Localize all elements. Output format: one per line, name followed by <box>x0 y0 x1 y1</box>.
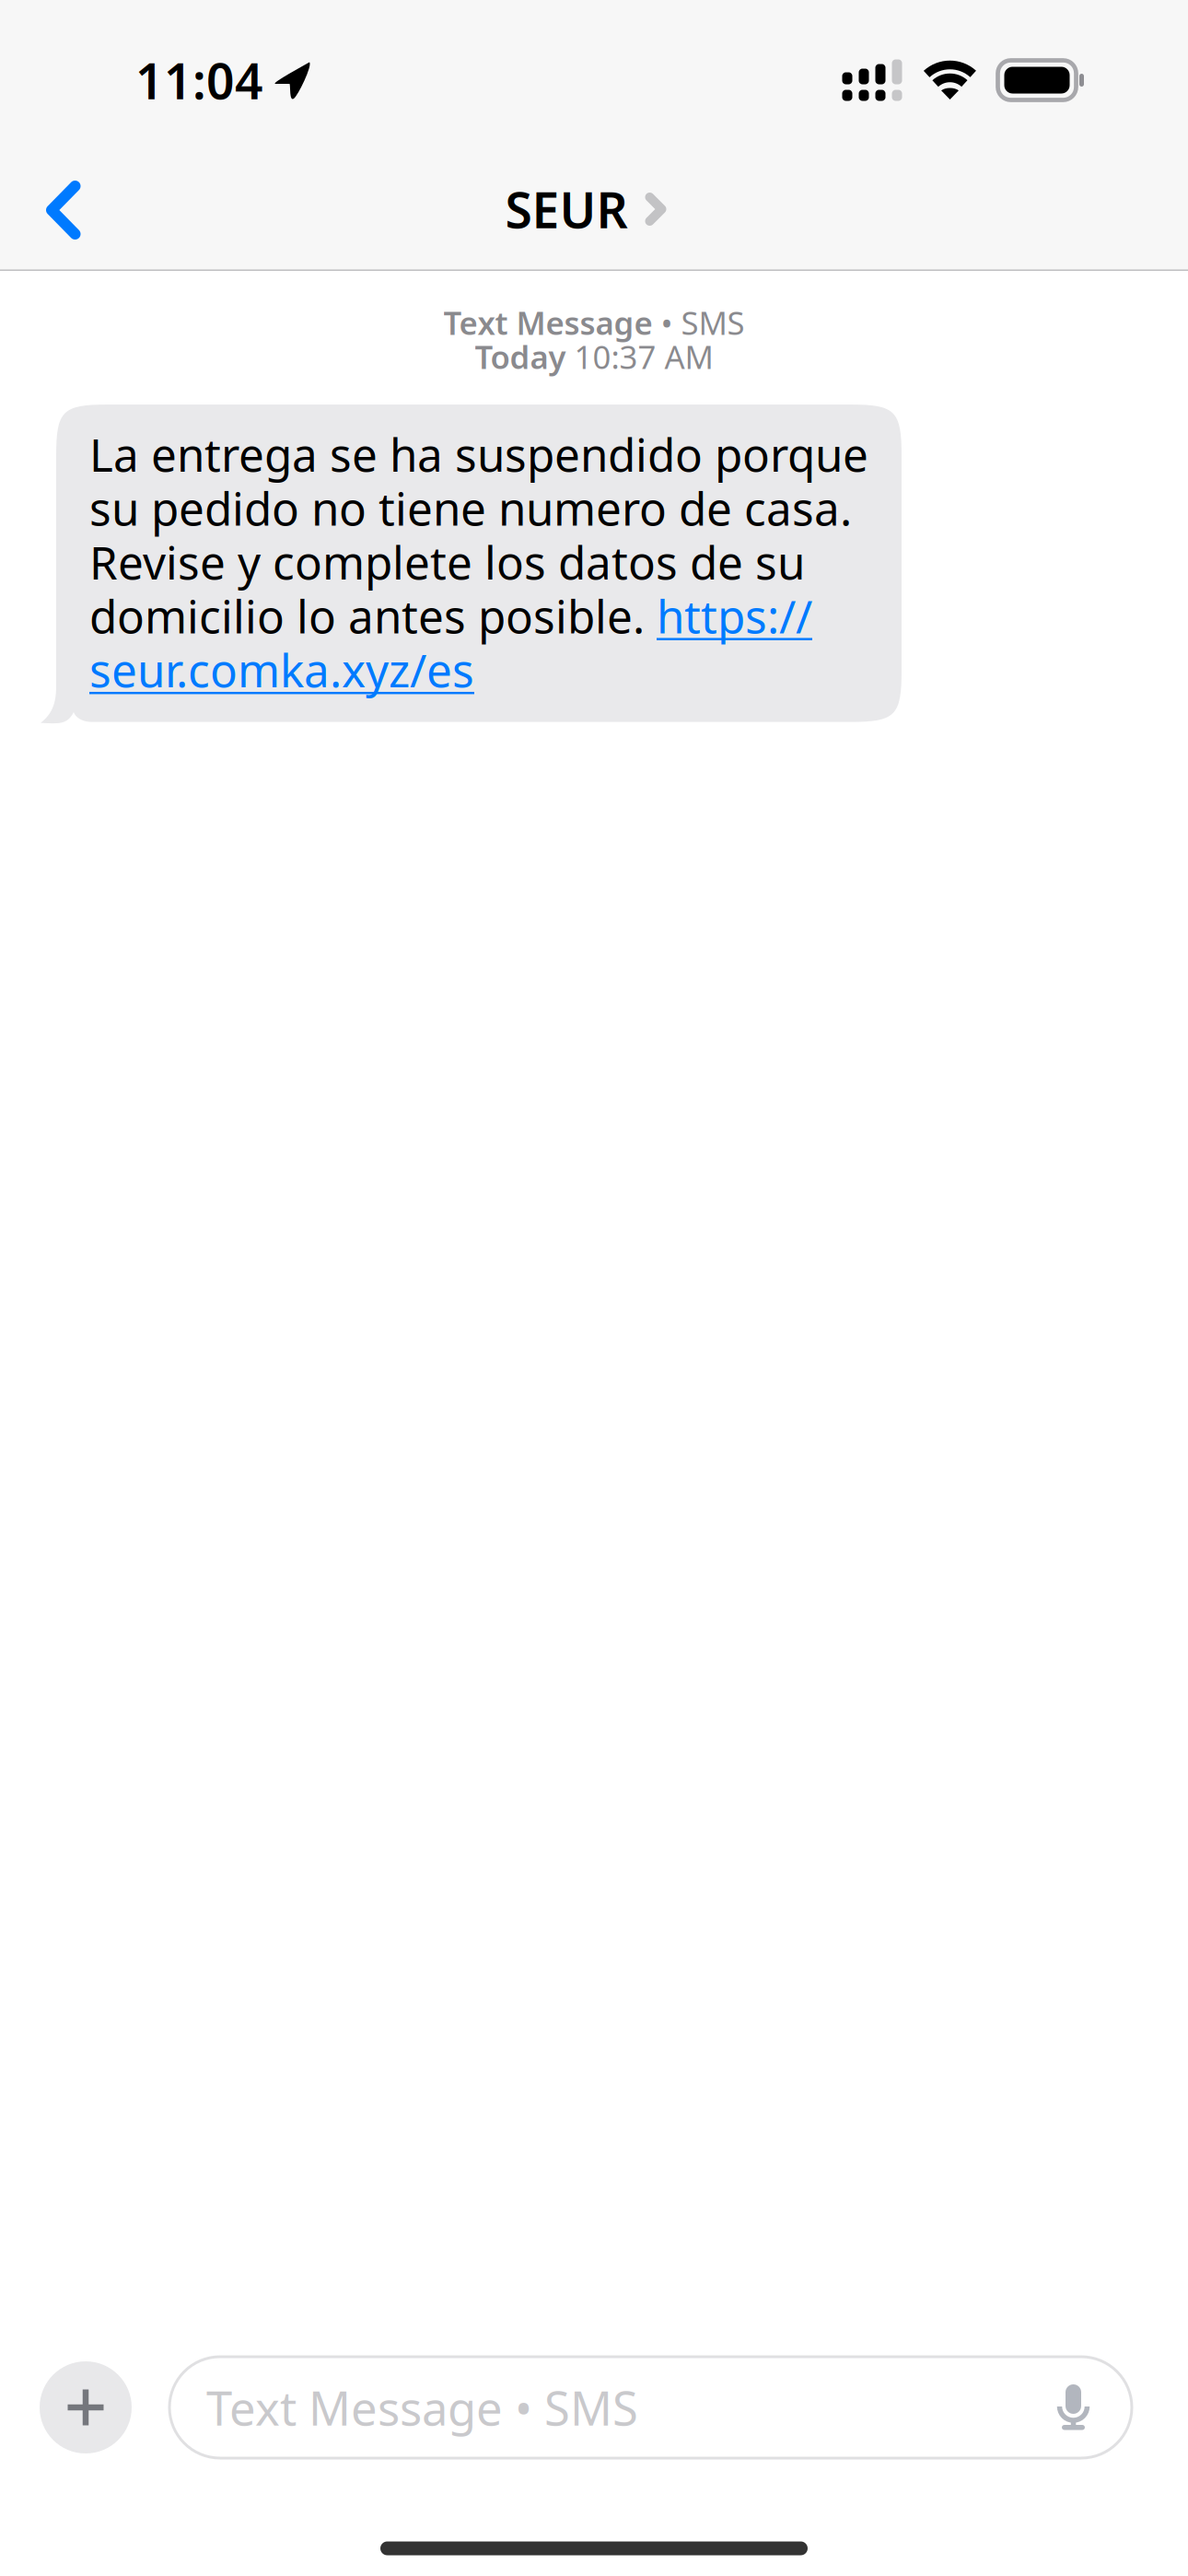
staticText: 11:04 <box>135 48 263 113</box>
staticText: Text Message • SMS <box>443 301 745 344</box>
button[interactable]: Back <box>0 147 118 271</box>
staticText: La entrega se ha suspendido porque su pe… <box>89 424 868 700</box>
staticText: Text Message • SMS <box>206 2376 638 2438</box>
staticText: SEUR <box>505 177 628 242</box>
button[interactable]: SEUR <box>494 147 694 271</box>
button[interactable]: Add attachment <box>40 2361 132 2453</box>
button[interactable]: Text Message • SMS <box>169 2357 1132 2458</box>
staticText: Today 10:37 AM <box>475 335 713 378</box>
